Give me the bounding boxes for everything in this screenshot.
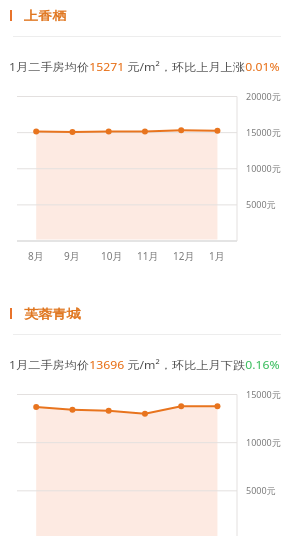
staticText: 1月二手房均价15271 元/m²，环比上月上涨0.01% — [9, 59, 280, 74]
staticText: 20000元 — [246, 90, 281, 102]
staticText: 10月 — [101, 249, 123, 263]
staticText: 11月 — [137, 249, 159, 263]
staticText: 10000元 — [246, 162, 281, 174]
staticText: 芙蓉青城 — [24, 306, 81, 321]
button[interactable]: 上香栖 — [0, 4, 291, 26]
staticText: 5000元 — [246, 484, 276, 496]
staticText: 12月 — [173, 249, 195, 263]
staticText: 8月 — [28, 249, 44, 263]
staticText: 1月二手房均价13696 元/m²，环比上月下跌0.16% — [9, 357, 280, 372]
staticText: 1月 — [209, 249, 225, 263]
staticText: 15000元 — [246, 388, 281, 400]
staticText: 上香栖 — [24, 8, 66, 23]
staticText: 9月 — [64, 249, 80, 263]
staticText: 15000元 — [246, 126, 281, 138]
staticText: 5000元 — [246, 198, 276, 210]
staticText: 10000元 — [246, 436, 281, 448]
button[interactable]: 芙蓉青城 — [0, 302, 291, 324]
